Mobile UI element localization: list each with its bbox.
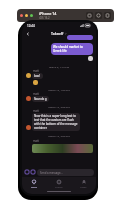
button[interactable]: We should market to Greek life [51, 43, 93, 55]
staticText: boo! [34, 74, 41, 78]
staticText: matt [33, 109, 39, 113]
staticText: March 6, 1:12 PM [25, 65, 93, 68]
staticText: matt [33, 139, 39, 143]
button[interactable]: boo! [25, 73, 43, 79]
button[interactable]: Back [24, 30, 31, 37]
staticText: Now this is a super long text to test th… [34, 114, 78, 130]
staticText: matt [33, 92, 39, 96]
button[interactable] [25, 38, 93, 43]
button[interactable]: Sounds g [25, 96, 49, 102]
button[interactable]: Screenshot [104, 12, 111, 19]
button[interactable]: Inbox [22, 177, 46, 191]
staticText: matt [33, 69, 39, 73]
button[interactable]: Chunks [46, 177, 71, 191]
staticText: Takeoff [51, 31, 64, 36]
staticText: Sounds g [34, 97, 47, 101]
button[interactable]: Now this is a super long text to test th… [25, 113, 80, 131]
staticText: > [65, 32, 67, 36]
button[interactable] [32, 144, 93, 153]
staticText: Inbox [31, 186, 37, 189]
staticText: iOS 16.2 [39, 16, 50, 20]
button[interactable]: Home [86, 12, 93, 19]
staticText: March 14, 4:09 PM [25, 134, 93, 137]
button[interactable]: Photo [30, 169, 36, 175]
button[interactable]: Add [24, 169, 30, 175]
button[interactable]: Send a message... [37, 169, 94, 176]
staticText: March 14, 3:08 PM [25, 105, 93, 108]
staticText: We should market to Greek life [53, 45, 91, 53]
button[interactable]: Logan [71, 177, 96, 191]
staticText: Chunks [55, 186, 63, 189]
staticText: Logan [80, 186, 87, 189]
staticText: March 14, 1:50 PM [25, 88, 93, 91]
staticText: 12:44 [27, 24, 35, 28]
staticText: Send a message... [40, 171, 63, 175]
button[interactable]: Takeoff [51, 31, 67, 36]
button[interactable]: Rotate [95, 12, 102, 19]
staticText: iPhone 14 [39, 11, 57, 16]
